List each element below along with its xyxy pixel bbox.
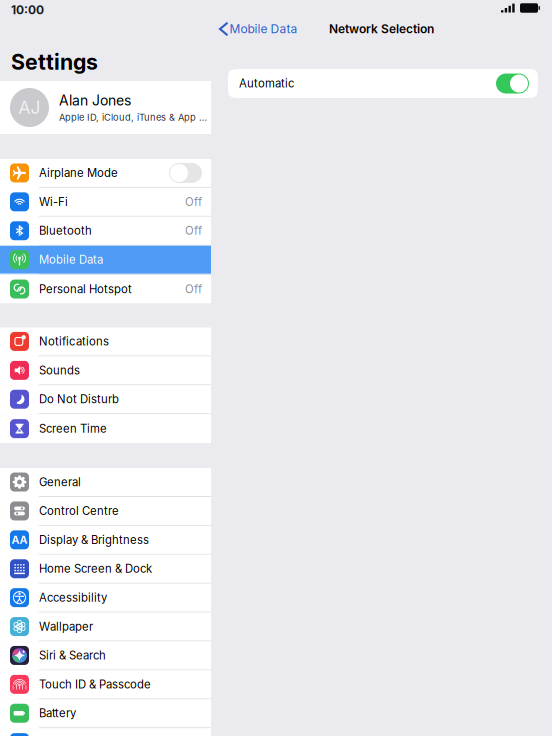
button[interactable]: Mobile Data [0,246,211,275]
staticText: Do Not Disturb [39,392,119,406]
button[interactable]: Siri & Search [0,641,211,670]
staticText: Personal Hotspot [39,282,132,296]
button[interactable]: Wi-Fi [0,188,211,217]
button[interactable]: Home Screen & Dock [0,555,211,584]
staticText: Wallpaper [39,620,93,633]
staticText: General [39,475,81,489]
button[interactable]: AA [0,526,211,555]
staticText: Alan Jones [59,92,131,109]
staticText: Notifications [39,335,109,348]
button[interactable]: AJ [0,81,211,134]
button[interactable]: Screen Time [0,414,211,443]
button[interactable]: Do Not Disturb [0,385,211,414]
staticText: Bluetooth [39,224,92,238]
staticText: Off [185,282,202,296]
staticText: Control Centre [39,504,119,518]
button[interactable]: Battery [0,699,211,728]
staticText: Wi-Fi [39,195,68,209]
button[interactable]: Personal Hotspot [0,275,211,303]
staticText: Display & Brightness [39,533,149,547]
staticText: AA [11,533,27,546]
staticText: 10:00 [11,3,44,17]
button[interactable]: Touch ID & Passcode [0,670,211,699]
staticText: Battery [39,706,76,720]
staticText: Mobile Data [39,253,103,266]
staticText: Mobile Data [229,22,297,36]
button[interactable]: Bluetooth [0,217,211,246]
button[interactable]: Automatic [228,69,538,98]
button[interactable]: Wallpaper [0,613,211,641]
staticText: AJ [18,97,40,118]
button[interactable]: Sounds [0,356,211,385]
staticText: Airplane Mode [39,166,118,180]
staticText: Automatic [239,77,294,90]
button[interactable]: General [0,468,211,497]
staticText: Off [185,224,202,238]
button[interactable]: Airplane Mode [0,159,211,188]
staticText: Home Screen & Dock [39,562,152,576]
button[interactable]: Control Centre [0,497,211,526]
button[interactable]: Accessibility [0,584,211,613]
button[interactable]: Notifications [0,327,211,356]
staticText: Settings [11,49,98,75]
staticText: Accessibility [39,591,107,604]
staticText: Screen Time [39,422,107,435]
button[interactable]: Mobile Data [211,16,305,42]
staticText: Touch ID & Passcode [39,677,151,691]
staticText: Network Selection [329,22,434,36]
staticText: Siri & Search [39,649,106,662]
button[interactable]: Privacy [0,728,211,736]
staticText: Sounds [39,363,80,377]
staticText: Apple ID, iCloud, iTunes & App St... [59,112,211,123]
staticText: Off [185,195,202,209]
